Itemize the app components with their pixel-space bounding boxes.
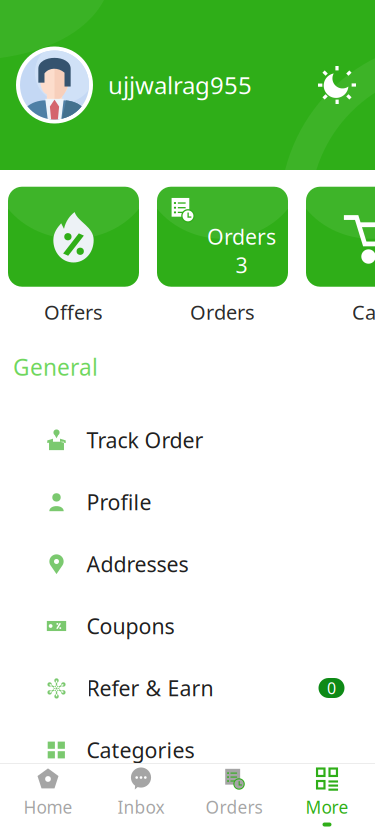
button[interactable]: Home — [1, 764, 94, 828]
staticText: Coupons — [86, 612, 174, 640]
staticText: More — [305, 795, 348, 818]
staticText: Refer & Earn — [86, 674, 213, 702]
button[interactable]: Offers — [8, 166, 139, 325]
staticText: 3 — [235, 251, 247, 279]
button[interactable]: Coupons — [13, 595, 370, 657]
button[interactable]: Refer & Earn — [13, 657, 370, 719]
button[interactable]: More — [280, 764, 373, 828]
staticText: Orders — [207, 222, 276, 251]
button[interactable]: Orders — [157, 166, 288, 325]
staticText: Profile — [86, 488, 151, 516]
staticText: Orders — [190, 299, 255, 325]
staticText: Inbox — [117, 795, 164, 818]
button[interactable]: Inbox — [94, 764, 187, 828]
button[interactable]: Toggle dark mode — [315, 63, 359, 107]
staticText: Categories — [86, 736, 194, 764]
button[interactable]: Categories — [13, 719, 370, 781]
button[interactable]: Orders — [187, 764, 280, 828]
button[interactable]: Profile — [13, 471, 370, 533]
staticText: 0 — [327, 677, 336, 699]
staticText: Home — [23, 795, 72, 818]
button[interactable]: Track Order — [13, 409, 370, 471]
staticText: Orders — [205, 795, 262, 818]
staticText: Addresses — [86, 550, 188, 578]
staticText: General — [13, 352, 98, 382]
staticText: ujjwalrag955 — [108, 69, 252, 101]
staticText: Cart — [352, 299, 375, 325]
staticText: Offers — [44, 299, 103, 325]
button[interactable]: Addresses — [13, 533, 370, 595]
button[interactable]: Cart — [306, 166, 375, 325]
staticText: Track Order — [86, 426, 203, 454]
